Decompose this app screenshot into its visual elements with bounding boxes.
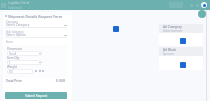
staticText: 0.5 [9,70,13,74]
staticText: 1 [9,61,11,65]
staticText: Sponsor [163,52,174,56]
staticText: Sub Category [6,30,24,34]
staticText: Category [6,20,18,24]
staticText: Item Qty [7,56,20,60]
staticText: Submit Request [25,94,48,98]
staticText: Shipment Details Request Form [8,14,63,19]
staticText: Logistics Portal [8,1,30,5]
button[interactable]: Account [201,2,207,8]
button[interactable]: Submit Request [5,92,67,99]
button[interactable] [7,51,42,56]
staticText: Select Option [6,33,26,37]
staticText: Select Category [6,23,30,27]
staticText: Dashboard [8,6,22,10]
staticText: Ad Category [163,25,182,29]
staticText: Total Price [6,79,22,83]
button[interactable] [7,69,33,74]
button[interactable]: Apps [189,3,193,7]
staticText: $ 0.00 [56,79,65,83]
staticText: Advertisement [163,29,183,33]
staticText: Weight [7,65,17,69]
staticText: Dimension [7,47,23,51]
button[interactable] [159,24,203,33]
staticText: Ad Block [163,48,177,52]
button[interactable]: Help [198,10,206,18]
button[interactable] [7,60,42,65]
staticText: Small [9,52,17,56]
button[interactable] [159,47,203,56]
button[interactable]: Notifications [195,3,199,7]
staticText: Item [6,40,13,44]
